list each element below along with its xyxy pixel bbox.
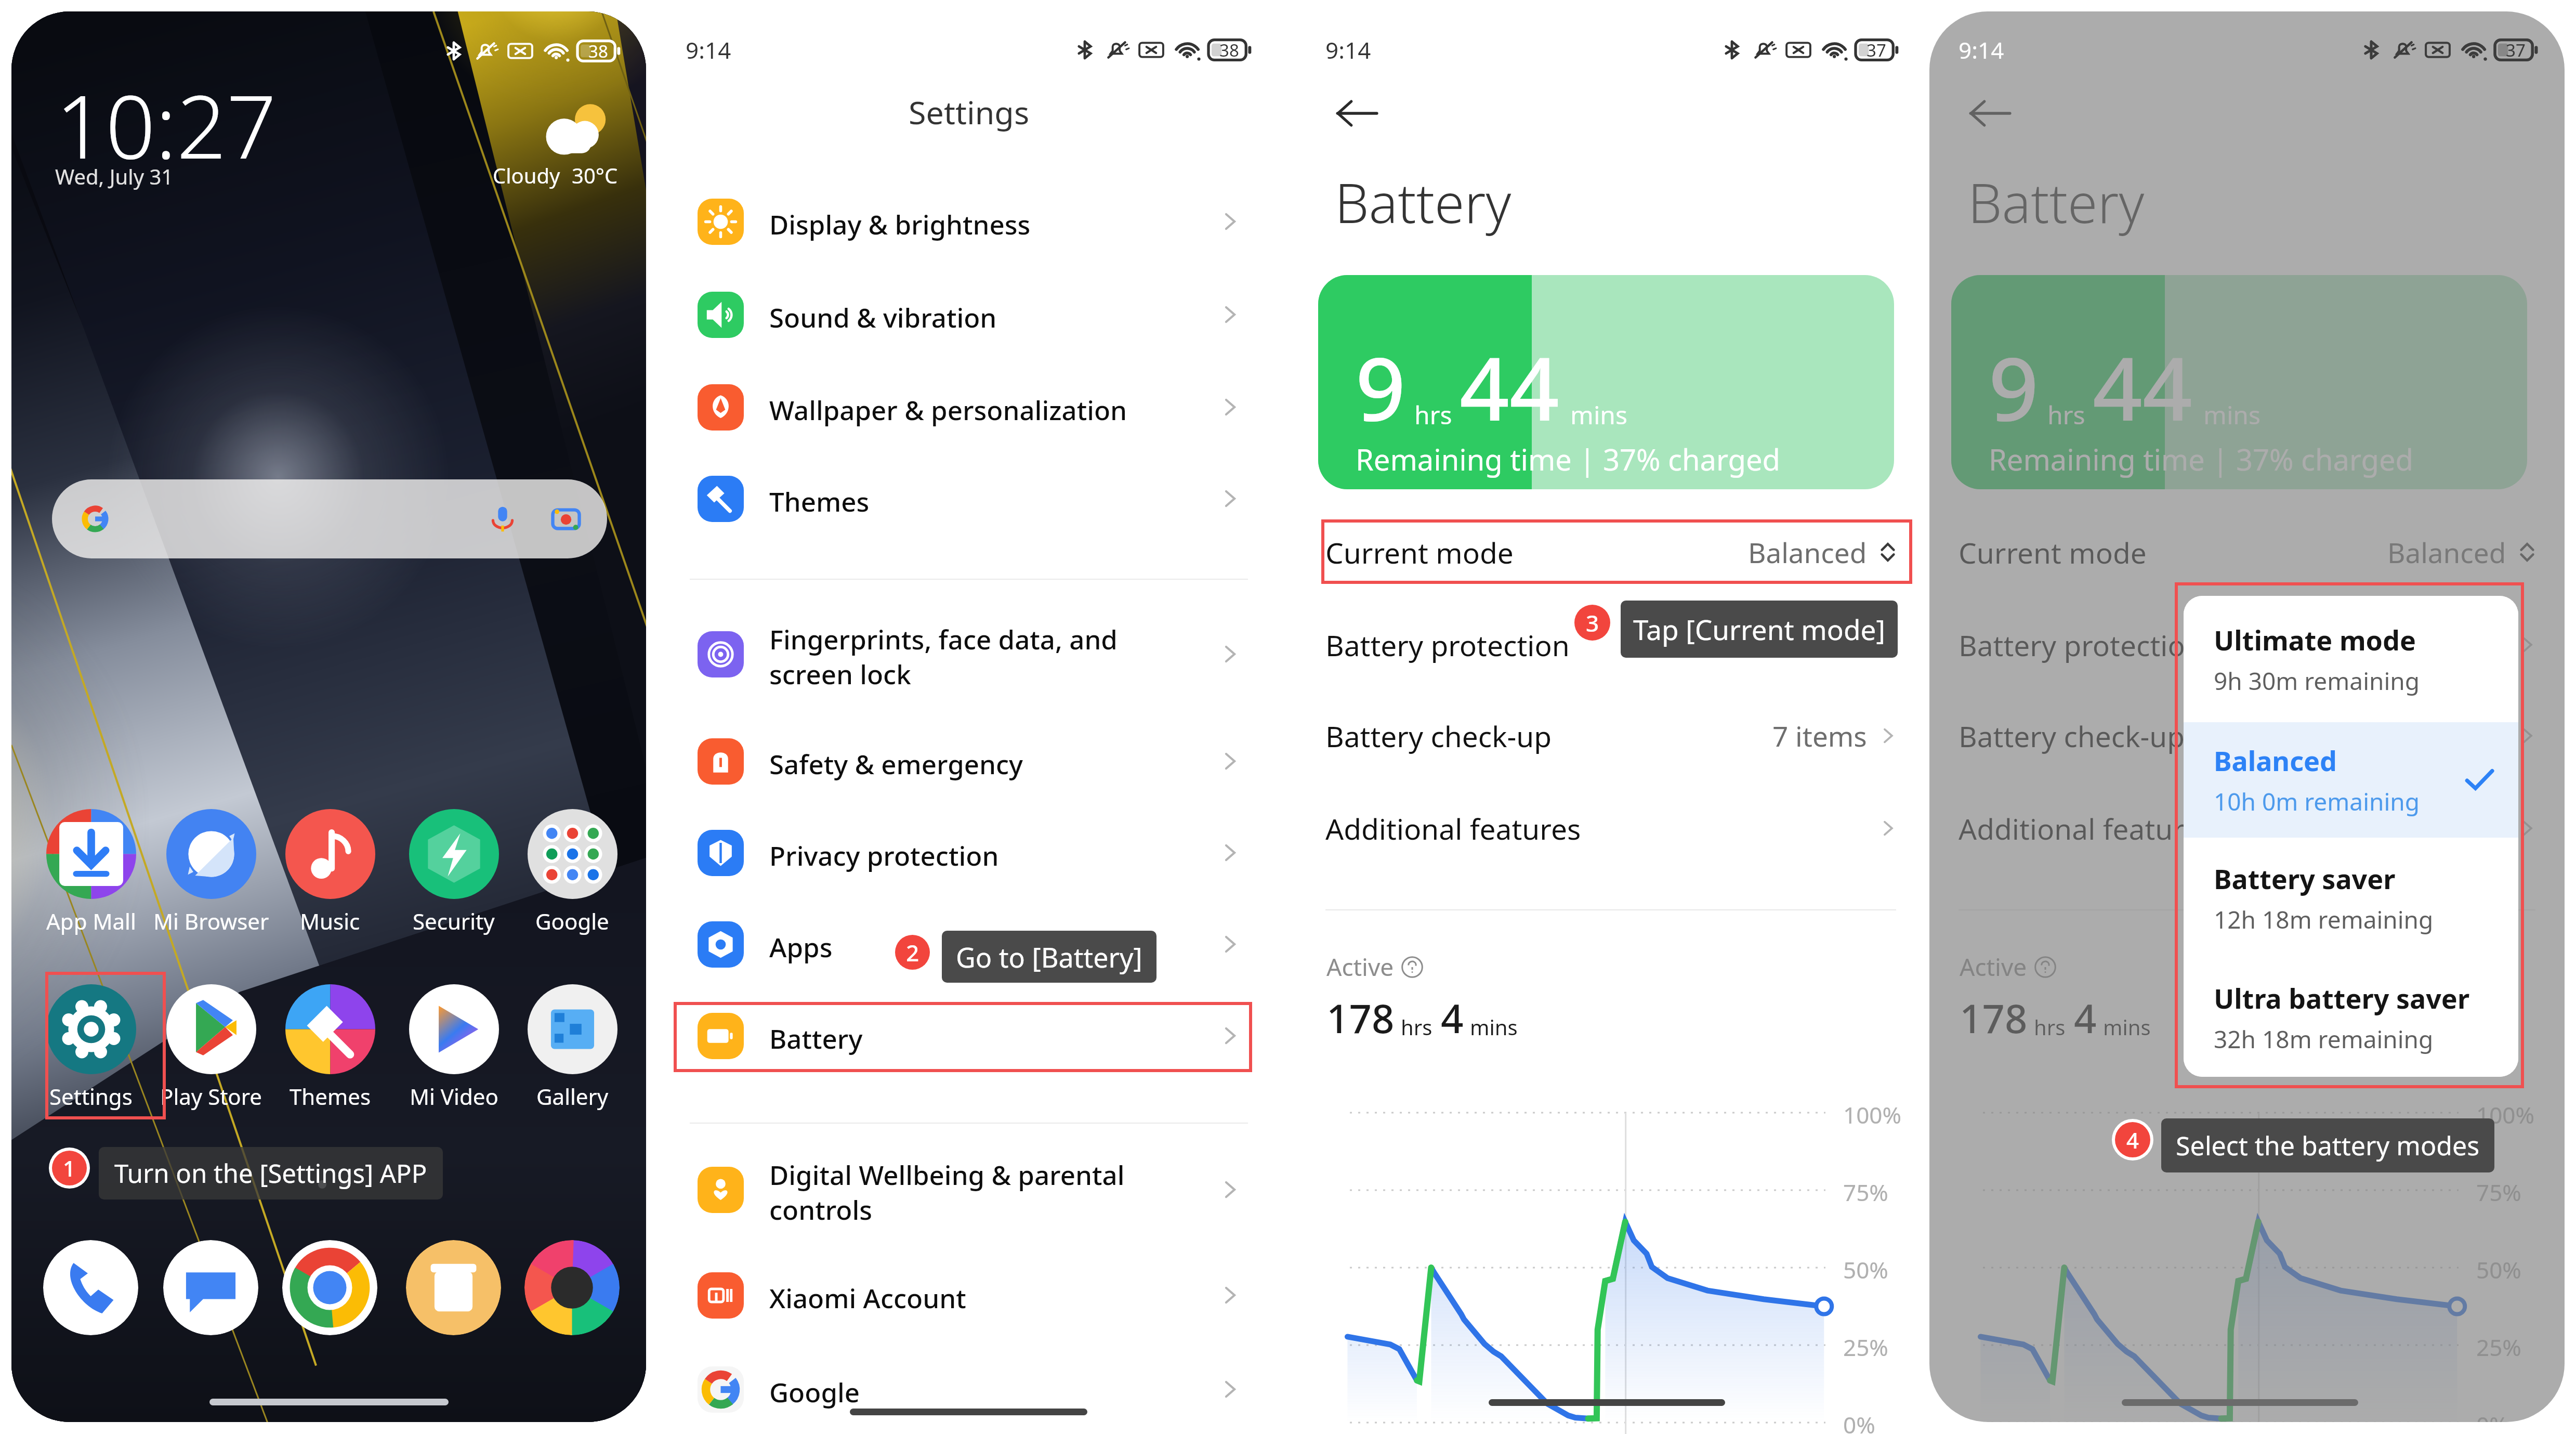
button[interactable]: Themes: [663, 457, 1275, 540]
staticText: Battery check-up: [1325, 716, 1552, 755]
staticText: Security: [413, 906, 495, 936]
button[interactable]: Themes: [270, 984, 390, 1111]
staticText: Battery check-up: [1959, 716, 2185, 755]
staticText: Active: [1960, 950, 2027, 983]
button[interactable]: App Mall: [31, 809, 151, 936]
button[interactable]: Phone: [43, 1240, 138, 1335]
staticText: 75%: [1843, 1177, 1888, 1208]
button[interactable]: Mi Video: [394, 984, 514, 1111]
staticText: 44: [1460, 327, 1560, 446]
button[interactable]: Privacy protection: [663, 811, 1275, 894]
staticText: Current mode: [1325, 533, 1514, 572]
staticText: 1: [63, 1153, 76, 1183]
button[interactable]: Music: [270, 809, 390, 936]
button[interactable]: Apps: [663, 903, 1275, 986]
staticText: Google: [535, 906, 609, 936]
button[interactable]: Fingerprints, face data, and screen lock: [663, 612, 1275, 696]
staticText: Battery protection: [1959, 625, 2203, 664]
staticText: 100%: [1843, 1099, 1902, 1130]
button[interactable]: Battery protection: [1929, 612, 2565, 677]
button[interactable]: Xiaomi Account: [663, 1254, 1275, 1337]
button[interactable]: Security: [394, 809, 514, 936]
button[interactable]: Battery saver: [2184, 838, 2518, 958]
staticText: Themes: [290, 1081, 371, 1111]
button[interactable]: Safety & emergency: [663, 720, 1275, 803]
button[interactable]: Current mode: [1296, 520, 1925, 584]
button[interactable]: Sound & vibration: [663, 273, 1275, 356]
staticText: 4: [1441, 991, 1464, 1045]
button[interactable]: Ultimate mode: [2184, 596, 2518, 722]
staticText: 9: [1989, 327, 2039, 446]
button[interactable]: Additional features: [1296, 796, 1925, 861]
staticText: Balanced: [1748, 533, 1867, 571]
button[interactable]: Cleaner: [406, 1240, 501, 1335]
button[interactable]: Battery protection: [1296, 612, 1925, 677]
staticText: mins: [1570, 398, 1627, 432]
staticText: 9:14: [1959, 34, 2004, 66]
button[interactable]: [52, 479, 607, 558]
button[interactable]: Battery: [663, 994, 1275, 1077]
button[interactable]: Google: [663, 1348, 1275, 1431]
staticText: Gallery: [536, 1081, 609, 1111]
staticText: hrs: [1401, 1013, 1432, 1041]
button[interactable]: Back: [1335, 90, 1381, 136]
button[interactable]: Settings: [31, 984, 151, 1111]
staticText: Battery protection: [1325, 625, 1570, 664]
button[interactable]: Additional features: [1929, 796, 2565, 861]
staticText: Battery: [769, 1020, 1214, 1056]
staticText: Sound & vibration: [769, 299, 1214, 335]
staticText: 44: [2093, 327, 2193, 446]
staticText: Battery: [1968, 165, 2145, 239]
staticText: hrs: [2047, 398, 2085, 432]
staticText: Select the battery modes: [2176, 1128, 2480, 1163]
staticText: Fingerprints, face data, and screen lock: [769, 621, 1214, 692]
button[interactable]: Gallery: [512, 984, 632, 1111]
staticText: mins: [2103, 1013, 2151, 1041]
staticText: App Mall: [46, 906, 136, 936]
button[interactable]: Current mode: [1929, 520, 2565, 584]
staticText: 75%: [2476, 1177, 2521, 1208]
button[interactable]: Mi Browser: [151, 809, 271, 936]
button[interactable]: Wallpaper & personalization: [663, 366, 1275, 449]
staticText: Mi Browser: [153, 906, 269, 936]
button[interactable]: Messages: [163, 1240, 258, 1335]
staticText: 4: [2074, 991, 2097, 1045]
button[interactable]: Digital Wellbeing & parental controls: [663, 1148, 1275, 1231]
staticText: Display & brightness: [769, 206, 1214, 242]
staticText: Battery saver: [2214, 860, 2396, 897]
staticText: Battery: [1335, 165, 1512, 239]
button[interactable]: Play Store: [151, 984, 271, 1111]
staticText: Balanced: [2387, 533, 2506, 571]
staticText: Go to [Battery]: [956, 938, 1142, 975]
button[interactable]: Google: [512, 809, 632, 936]
staticText: Settings: [909, 90, 1030, 134]
button[interactable]: Display & brightness: [663, 180, 1275, 263]
staticText: 0%: [2476, 1409, 2508, 1422]
staticText: Google: [769, 1374, 1214, 1410]
staticText: 9:14: [686, 34, 731, 66]
staticText: Cloudy: [493, 161, 560, 189]
staticText: Themes: [769, 483, 1214, 519]
staticText: 10:27: [56, 65, 277, 184]
staticText: Apps: [769, 929, 1214, 964]
button[interactable]: Battery check-up: [1929, 703, 2565, 768]
staticText: Mi Video: [410, 1081, 498, 1111]
staticText: 9: [1356, 327, 1406, 446]
staticText: 178: [1960, 991, 2028, 1045]
staticText: 38: [1219, 38, 1239, 61]
button[interactable]: Camera: [524, 1240, 620, 1335]
button[interactable]: Battery check-up: [1296, 703, 1925, 768]
staticText: 3: [1586, 607, 1599, 638]
staticText: 30°C: [572, 161, 618, 189]
staticText: Privacy protection: [769, 837, 1214, 873]
staticText: 100%: [2476, 1099, 2535, 1130]
button[interactable]: Chrome: [282, 1240, 377, 1335]
button[interactable]: Balanced: [2184, 722, 2518, 838]
button[interactable]: Back: [1968, 90, 2014, 136]
button[interactable]: Ultra battery saver: [2184, 958, 2518, 1077]
staticText: Additional features: [1959, 809, 2214, 848]
staticText: Settings: [49, 1081, 133, 1111]
staticText: Balanced: [2214, 742, 2337, 779]
staticText: Wallpaper & personalization: [769, 392, 1214, 427]
staticText: 9:14: [1959, 34, 2004, 66]
